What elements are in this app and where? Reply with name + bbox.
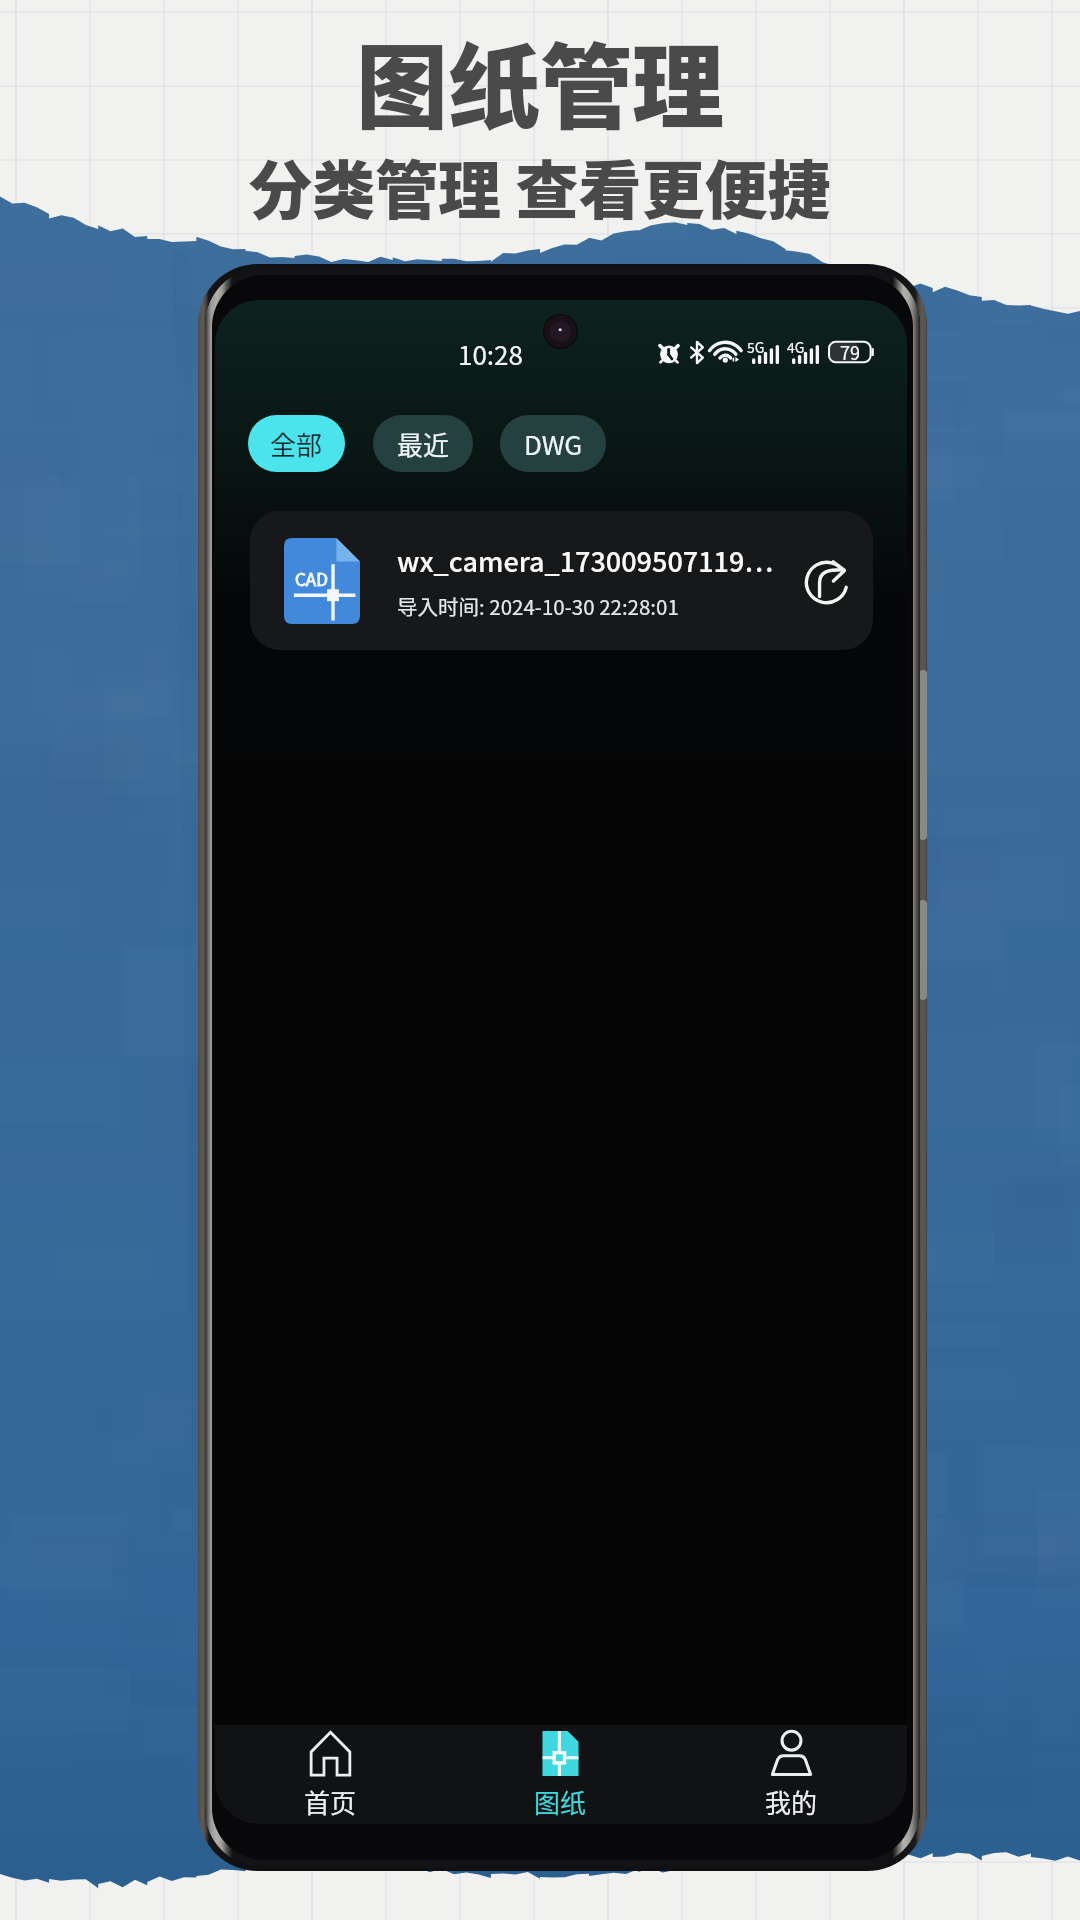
staticText: 全部 bbox=[270, 425, 323, 463]
button[interactable]: 图纸 bbox=[445, 1725, 676, 1824]
staticText: wx_camera_173009507119… bbox=[397, 541, 774, 580]
staticText: 我的 bbox=[765, 1783, 818, 1821]
staticText: 图纸 bbox=[534, 1783, 587, 1821]
staticText: 79 bbox=[840, 339, 860, 363]
button[interactable]: 全部 bbox=[248, 415, 345, 472]
staticText: CAD bbox=[295, 566, 328, 591]
staticText: 图纸管理 bbox=[356, 14, 725, 147]
button[interactable]: CAD bbox=[250, 511, 873, 650]
staticText: 首页 bbox=[304, 1783, 357, 1821]
button[interactable]: Share bbox=[797, 550, 859, 612]
staticText: 分类管理 查看更便捷 bbox=[249, 140, 831, 231]
staticText: DWG bbox=[524, 425, 583, 463]
staticText: 4G bbox=[787, 337, 805, 357]
button[interactable]: 首页 bbox=[215, 1725, 445, 1824]
button[interactable]: 我的 bbox=[676, 1725, 907, 1824]
button[interactable]: DWG bbox=[500, 415, 606, 472]
staticText: 最近 bbox=[397, 425, 450, 463]
staticText: 10:28 bbox=[458, 335, 523, 373]
staticText: 5G bbox=[747, 337, 765, 357]
button[interactable]: 最近 bbox=[373, 415, 473, 472]
staticText: 导入时间: 2024-10-30 22:28:01 bbox=[397, 591, 679, 621]
